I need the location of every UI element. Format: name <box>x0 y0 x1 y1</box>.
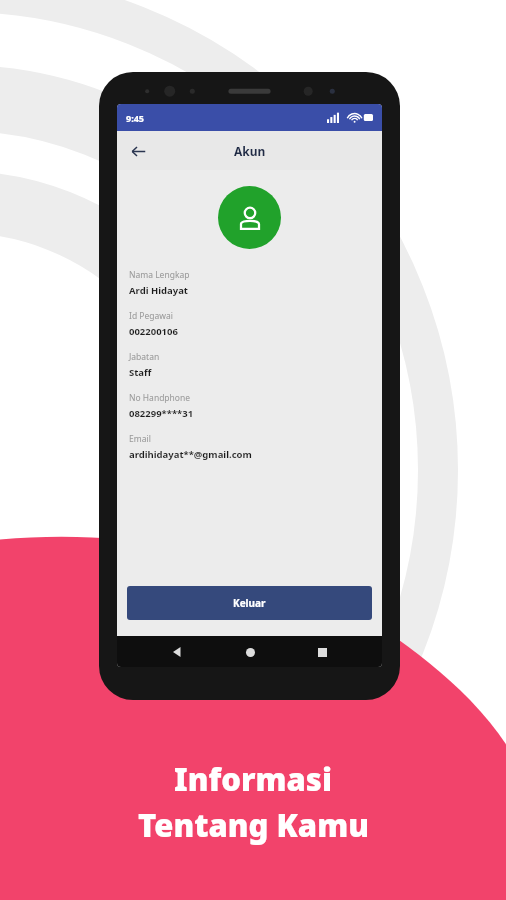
staticText: Informasi <box>174 758 332 800</box>
staticText: No Handphone <box>129 392 191 404</box>
staticText: Tentang Kamu <box>138 804 369 846</box>
staticText: 9:45 <box>126 112 144 124</box>
staticText: Email <box>129 433 151 445</box>
staticText: Ardi Hidayat <box>129 284 188 297</box>
staticText: Id Pegawai <box>129 310 173 322</box>
button[interactable]: Recent apps <box>309 639 335 665</box>
button[interactable]: Home <box>237 639 263 665</box>
staticText: Akun <box>234 143 266 159</box>
button[interactable]: Back <box>123 136 153 166</box>
button[interactable]: Profile photo <box>218 186 281 249</box>
staticText: ardihidayat**@gmail.com <box>129 448 252 461</box>
staticText: Keluar <box>233 596 266 610</box>
button[interactable]: Back <box>164 639 190 665</box>
staticText: Nama Lengkap <box>129 269 190 281</box>
staticText: Staff <box>129 366 152 379</box>
staticText: 002200106 <box>129 325 178 338</box>
staticText: Jabatan <box>129 351 160 363</box>
button[interactable]: Keluar <box>127 586 372 620</box>
staticText: 082299****31 <box>129 407 194 420</box>
